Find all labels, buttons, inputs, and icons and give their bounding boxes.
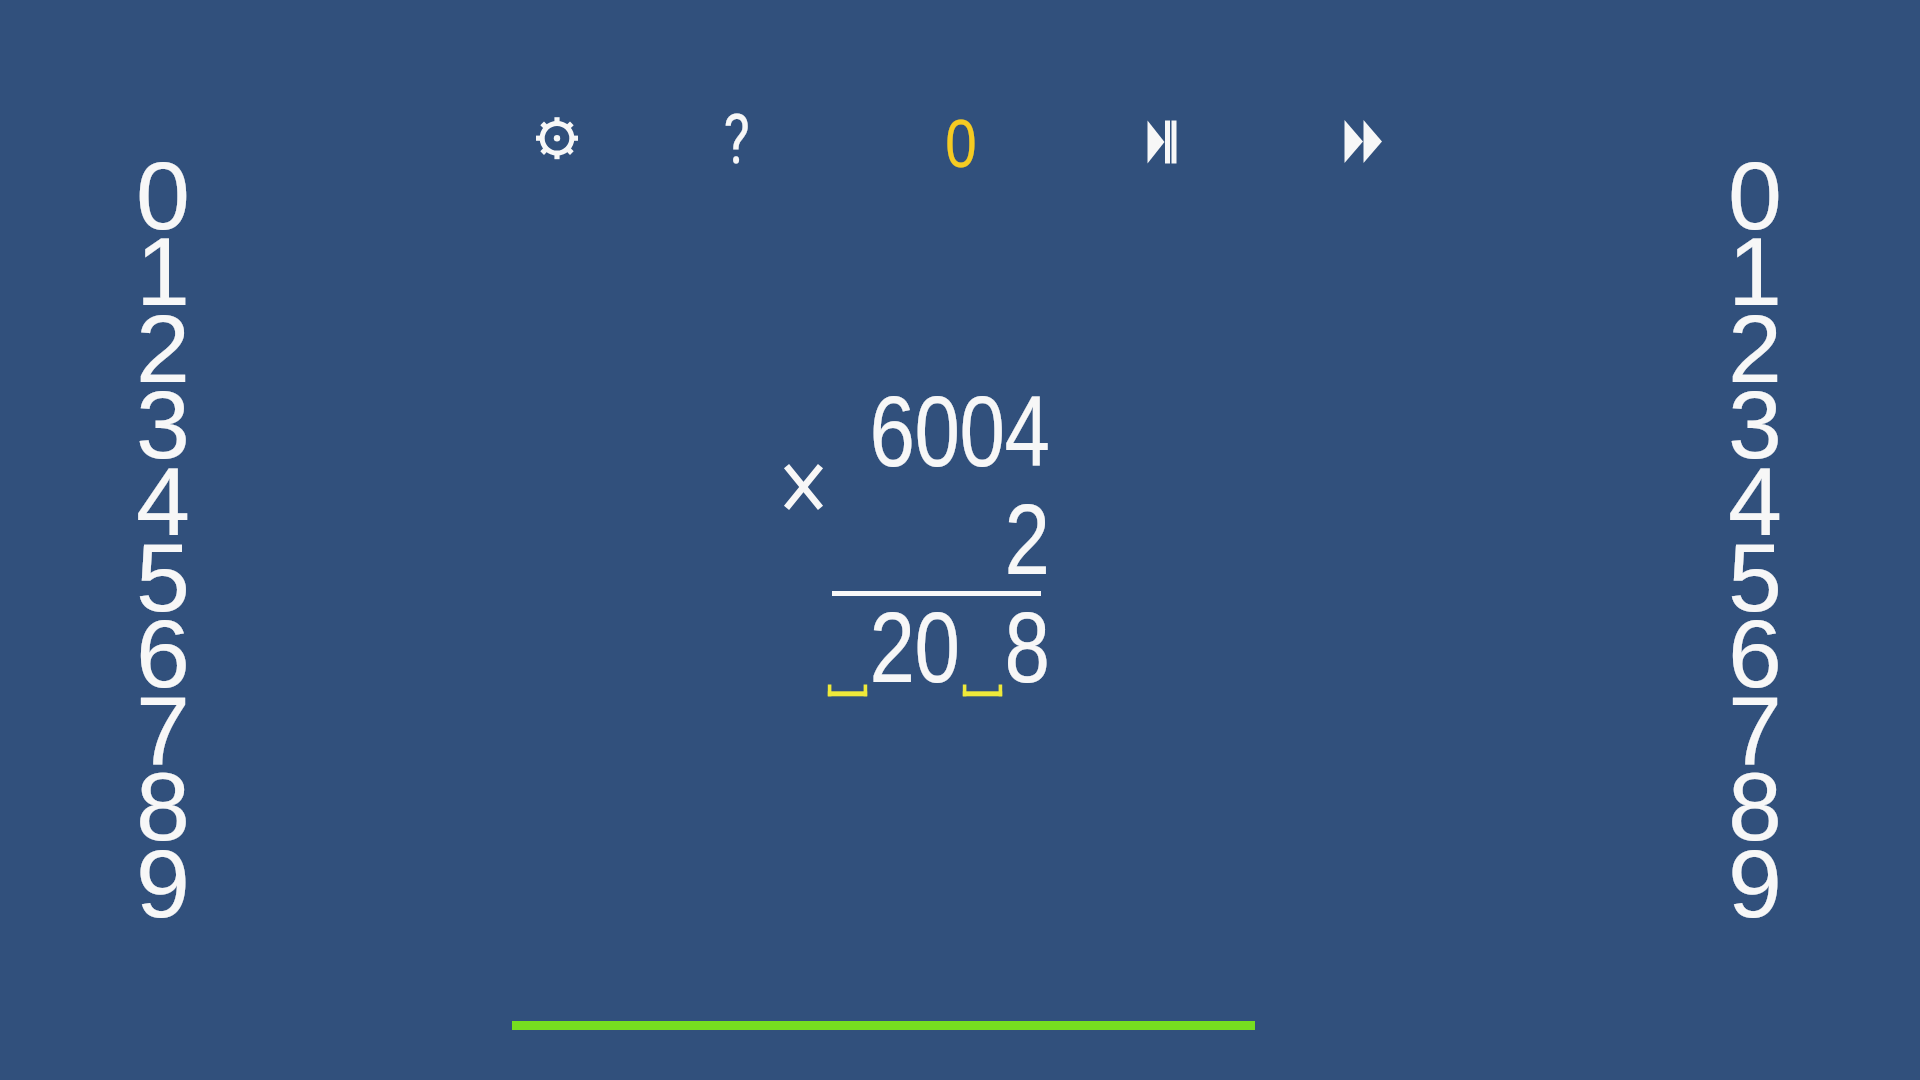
button[interactable]: Digit 4 — [1724, 458, 1786, 534]
button[interactable]: Empty answer digit — [960, 656, 1005, 700]
button[interactable]: Digit 8 — [132, 763, 194, 839]
button[interactable]: Play or pause — [1130, 107, 1194, 171]
button[interactable]: Score: 0 — [929, 107, 993, 171]
button[interactable]: Digit 4 — [132, 458, 194, 534]
button[interactable]: Digit 3 — [132, 381, 194, 457]
button[interactable]: Digit 5 — [1724, 534, 1786, 610]
button[interactable]: Digit 9 — [1724, 840, 1786, 916]
button[interactable]: Digit 1 — [132, 228, 194, 304]
button[interactable]: Digit 5 — [132, 534, 194, 610]
button[interactable]: Digit 1 — [1724, 228, 1786, 304]
button[interactable]: Settings — [525, 107, 589, 171]
button[interactable]: Digit 2 — [132, 305, 194, 381]
button[interactable]: Digit 6 — [132, 610, 194, 686]
button[interactable]: Empty answer digit — [825, 656, 870, 700]
button[interactable]: Digit 0 — [1724, 152, 1786, 228]
button[interactable]: Skip to next — [1331, 107, 1395, 171]
button[interactable]: Digit 7 — [132, 687, 194, 763]
button[interactable]: Digit 0 — [132, 152, 194, 228]
button[interactable]: Digit 6 — [1724, 610, 1786, 686]
button[interactable]: Digit 2 — [1724, 305, 1786, 381]
button[interactable]: Digit 3 — [1724, 381, 1786, 457]
button[interactable]: Digit 8 — [1724, 763, 1786, 839]
button[interactable]: Digit 9 — [132, 840, 194, 916]
button[interactable]: Help — [705, 107, 769, 171]
button[interactable]: Digit 7 — [1724, 687, 1786, 763]
